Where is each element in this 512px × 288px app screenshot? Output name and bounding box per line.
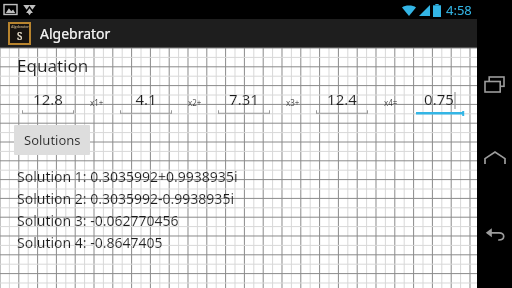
button[interactable]: 7.31 xyxy=(206,89,282,116)
staticText: Solution 3: -0.062770456 xyxy=(17,211,179,230)
staticText: 0.75 xyxy=(424,89,454,109)
button[interactable]: 0.75 xyxy=(402,89,477,116)
staticText: 7.31 xyxy=(229,89,259,109)
staticText: x2+ xyxy=(188,97,202,108)
staticText: 4:58 xyxy=(446,1,472,19)
button[interactable]: 4.1 xyxy=(108,89,184,116)
staticText: S xyxy=(17,29,23,43)
staticText: 4.1 xyxy=(135,89,157,109)
button[interactable]: 12.8 xyxy=(10,89,86,116)
staticText: x1+ xyxy=(90,97,104,108)
staticText: Solution 2: 0.3035992-0.9938935i xyxy=(17,189,234,208)
button[interactable]: Solutions xyxy=(14,125,90,155)
staticText: Algebrator xyxy=(40,24,111,43)
staticText: x3+ xyxy=(286,97,300,108)
staticText: x4= xyxy=(384,97,398,108)
staticText: Algebrator xyxy=(11,24,29,29)
staticText: Equation xyxy=(17,54,89,77)
staticText: Solution 1: 0.3035992+0.9938935i xyxy=(17,167,238,186)
staticText: 12.4 xyxy=(327,89,357,109)
staticText: Solutions xyxy=(24,131,81,149)
button[interactable]: Back xyxy=(477,204,512,260)
button[interactable]: Home xyxy=(477,130,512,186)
button[interactable]: 12.4 xyxy=(304,89,380,116)
button[interactable]: Recent apps xyxy=(477,56,512,112)
staticText: Solution 4: -0.8647405 xyxy=(17,233,163,252)
staticText: 12.8 xyxy=(33,89,63,109)
